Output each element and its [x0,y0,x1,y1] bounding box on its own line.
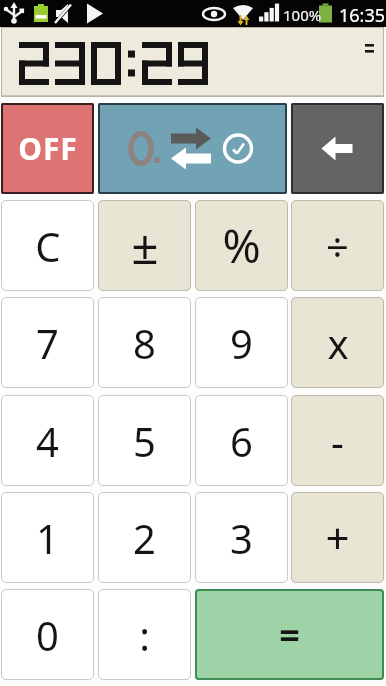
button[interactable]: 3 [195,492,288,583]
button[interactable]: % [195,200,288,291]
button[interactable]: 7 [1,297,94,388]
button[interactable]: 1 [1,492,94,583]
staticText: : [139,608,150,662]
staticText: 7 [36,316,59,370]
button[interactable]: 9 [195,297,288,388]
staticText: 1 [36,511,59,565]
staticText: 16:35 [339,3,386,28]
button[interactable] [98,103,287,194]
button[interactable]: 4 [1,395,94,486]
button[interactable]: = [195,589,384,680]
staticText: OFF [18,128,78,169]
button[interactable]: OFF [1,103,94,194]
staticText: 8 [133,316,156,370]
staticText: x [327,316,349,370]
staticText: = [279,610,300,659]
button[interactable]: ÷ [291,200,384,291]
staticText: 2 [133,511,156,565]
button[interactable]: ± [98,200,191,291]
staticText: 100% [283,5,322,25]
staticText: 3 [230,511,253,565]
staticText: 0 [36,608,59,662]
button[interactable]: C [1,200,94,291]
staticText: 4 [36,414,59,468]
staticText: % [222,214,261,277]
staticText: ± [131,213,159,278]
button[interactable]: : [98,589,191,680]
button[interactable]: 2 [98,492,191,583]
staticText: - [331,414,344,468]
staticText: 6 [230,414,253,468]
button[interactable]: + [291,492,384,583]
button[interactable]: 6 [195,395,288,486]
button[interactable]: x [291,297,384,388]
staticText: 5 [133,414,156,468]
button[interactable] [291,103,384,194]
button[interactable]: - [291,395,384,486]
button[interactable]: 5 [98,395,191,486]
staticText: + [325,509,350,566]
staticText: 9 [230,316,253,370]
button[interactable]: 8 [98,297,191,388]
staticText: ÷ [326,219,349,273]
button[interactable]: 0 [1,589,94,680]
staticText: C [35,219,61,273]
